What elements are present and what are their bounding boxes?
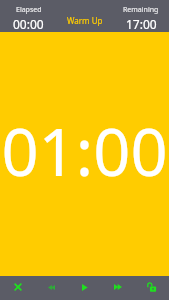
staticText: 00:00 <box>13 16 44 32</box>
button[interactable]: Previous interval <box>33 276 67 300</box>
staticText: 17:00 <box>126 16 157 32</box>
staticText: 01:00 <box>1 107 168 196</box>
button[interactable]: Unlock screen <box>135 276 169 300</box>
staticText: Remaining <box>123 5 159 15</box>
button[interactable]: Warm Up <box>57 0 113 32</box>
button[interactable]: Next interval <box>101 276 135 300</box>
button[interactable]: Stop workout <box>0 276 33 300</box>
staticText: Elapsed <box>16 5 42 15</box>
button[interactable]: Elapsed <box>0 0 57 32</box>
button[interactable]: Play <box>67 276 101 300</box>
staticText: Warm Up <box>67 15 103 26</box>
button[interactable]: Remaining <box>113 0 169 32</box>
